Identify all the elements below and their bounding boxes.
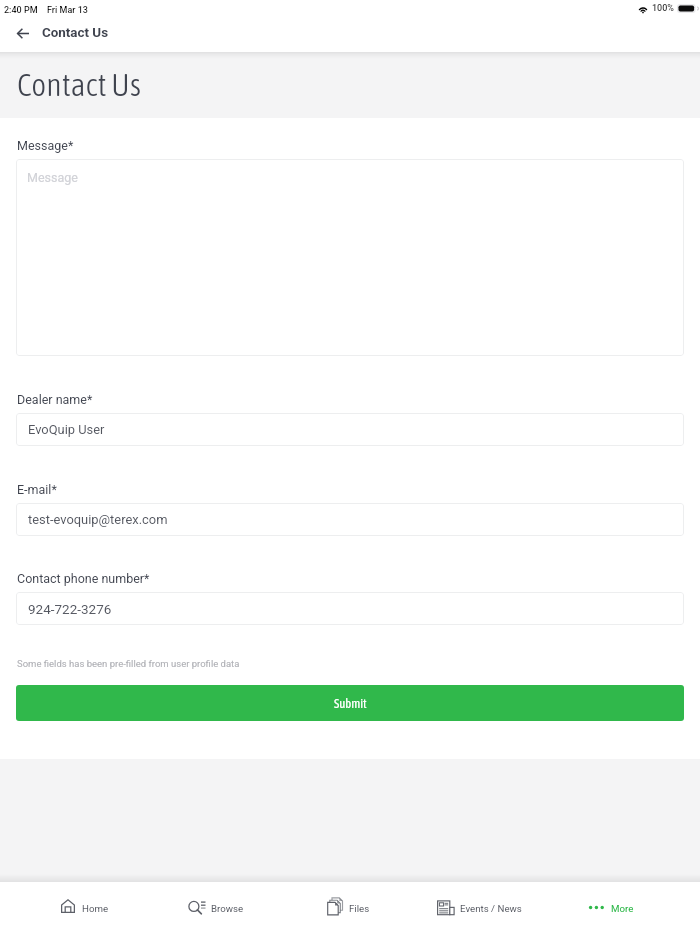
staticText: Contact Us (17, 66, 141, 102)
staticText: Fri Mar 13 (47, 5, 88, 16)
button[interactable]: Home (0, 882, 140, 934)
button[interactable]: Files (280, 882, 420, 934)
button[interactable]: Events / News (420, 882, 560, 934)
staticText: More (611, 903, 634, 914)
button[interactable]: More (560, 882, 700, 934)
staticText: E-mail* (17, 482, 57, 497)
button[interactable]: Back (4, 15, 41, 52)
staticText: 924-722-3276 (28, 601, 112, 617)
staticText: Home (82, 903, 109, 914)
button[interactable]: Browse (140, 882, 280, 934)
staticText: EvoQuip User (28, 422, 105, 437)
button[interactable]: Submit (16, 685, 684, 721)
staticText: Events / News (460, 903, 522, 914)
button[interactable]: test-evoquip@terex.com (16, 503, 684, 536)
staticText: test-evoquip@terex.com (28, 512, 168, 527)
staticText: 100% (652, 3, 674, 14)
staticText: Files (349, 903, 370, 914)
button[interactable]: EvoQuip User (16, 413, 684, 446)
staticText: Some fields has been pre-filled from use… (17, 658, 240, 669)
staticText: Contact phone number* (17, 571, 150, 586)
button[interactable]: 924-722-3276 (16, 592, 684, 625)
staticText: Submit (334, 696, 367, 710)
staticText: 2:40 PM (4, 5, 38, 16)
staticText: Dealer name* (17, 392, 93, 407)
staticText: Message (27, 170, 78, 185)
staticText: Browse (211, 903, 244, 914)
staticText: Message* (17, 138, 74, 153)
staticText: Contact Us (42, 25, 109, 41)
